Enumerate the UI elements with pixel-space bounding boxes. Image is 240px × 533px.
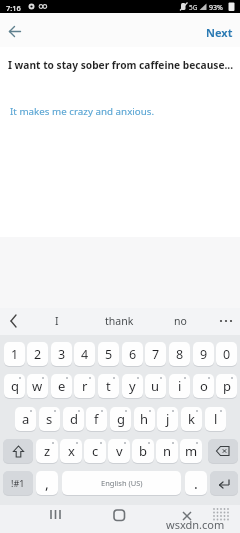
button[interactable]: h [134, 407, 155, 431]
button[interactable]: 0 [216, 342, 237, 366]
staticText: 5 [105, 346, 113, 363]
button[interactable]: i [169, 374, 190, 398]
staticText: l [214, 410, 218, 428]
staticText: r [82, 377, 88, 395]
button[interactable]: , [36, 471, 58, 495]
staticText: f [94, 410, 99, 428]
staticText: o [200, 377, 208, 395]
button[interactable]: y [122, 374, 143, 398]
staticText: h [140, 410, 149, 428]
button[interactable] [208, 439, 238, 463]
button[interactable]: Next [206, 25, 233, 40]
staticText: j [166, 410, 170, 428]
button[interactable] [175, 505, 199, 529]
button[interactable] [210, 471, 238, 495]
staticText: 0 [223, 346, 231, 363]
button[interactable]: n [156, 439, 178, 463]
button[interactable]: b [132, 439, 154, 463]
button[interactable]: !#1 [3, 471, 33, 495]
button[interactable] [3, 439, 33, 463]
button[interactable]: u [145, 374, 166, 398]
button[interactable]: r [74, 374, 95, 398]
staticText: a [22, 410, 30, 428]
button[interactable]: 7 [145, 342, 166, 366]
button[interactable]: c [84, 439, 106, 463]
staticText: z [44, 442, 51, 460]
button[interactable]: 9 [193, 342, 214, 366]
button[interactable]: 8 [169, 342, 190, 366]
button[interactable]: z [36, 439, 58, 463]
button[interactable]: English (US) [62, 471, 181, 495]
staticText: 1 [11, 346, 19, 363]
staticText: , [45, 474, 49, 493]
button[interactable]: no [160, 308, 200, 334]
staticText: y [129, 377, 136, 395]
button[interactable]: q [4, 374, 25, 398]
staticText: 8 [176, 346, 184, 363]
staticText: b [139, 442, 147, 460]
button[interactable]: d [63, 407, 84, 431]
staticText: 7 [152, 346, 160, 363]
staticText: m [185, 442, 198, 460]
button[interactable]: 3 [51, 342, 72, 366]
staticText: thank [105, 314, 134, 328]
button[interactable]: j [157, 407, 178, 431]
button[interactable]: o [193, 374, 214, 398]
staticText: 93% [209, 3, 223, 13]
staticText: 3 [58, 346, 66, 363]
staticText: 9 [200, 346, 208, 363]
staticText: It makes me crazy and anxious. [10, 105, 155, 118]
staticText: v [116, 442, 123, 460]
button[interactable]: m [180, 439, 202, 463]
button[interactable]: 5 [98, 342, 119, 366]
staticText: 5G [189, 3, 198, 12]
staticText: w [32, 377, 43, 395]
staticText: p [223, 377, 231, 395]
staticText: d [70, 410, 78, 428]
staticText: I want to stay sober from caffeine becau… [8, 58, 234, 72]
button[interactable]: 2 [27, 342, 48, 366]
staticText: wsxdn.com [166, 517, 225, 532]
button[interactable]: x [60, 439, 82, 463]
button[interactable] [109, 505, 133, 529]
button[interactable]: v [108, 439, 130, 463]
button[interactable]: 4 [74, 342, 95, 366]
button[interactable]: g [110, 407, 131, 431]
staticText: n [163, 442, 172, 460]
staticText: 2 [34, 346, 42, 363]
staticText: u [151, 377, 160, 395]
staticText: s [46, 410, 53, 428]
button[interactable]: t [98, 374, 119, 398]
button[interactable] [44, 505, 68, 529]
staticText: i [178, 377, 182, 395]
staticText: x [68, 442, 75, 460]
staticText: !#1 [11, 477, 25, 489]
button[interactable]: f [86, 407, 107, 431]
staticText: e [58, 377, 66, 395]
button[interactable]: a [15, 407, 36, 431]
staticText: k [188, 410, 195, 428]
staticText: t [106, 377, 111, 395]
staticText: 6 [129, 346, 137, 363]
button[interactable]: l [205, 407, 226, 431]
button[interactable]: . [185, 471, 207, 495]
button[interactable]: I [37, 308, 77, 334]
button[interactable]: 6 [122, 342, 143, 366]
staticText: English (US) [101, 478, 143, 488]
staticText: . [194, 474, 198, 493]
button[interactable] [2, 19, 28, 45]
button[interactable]: w [27, 374, 48, 398]
button[interactable]: e [51, 374, 72, 398]
staticText: q [11, 377, 19, 395]
staticText: I [55, 314, 59, 328]
staticText: 4 [81, 346, 89, 363]
button[interactable]: 1 [4, 342, 25, 366]
button[interactable]: s [39, 407, 60, 431]
button[interactable]: thank [99, 308, 139, 334]
staticText: c [92, 442, 99, 460]
staticText: no [174, 314, 187, 328]
staticText: g [117, 410, 125, 428]
button[interactable]: k [181, 407, 202, 431]
button[interactable]: p [216, 374, 237, 398]
staticText: 7:16 [6, 3, 21, 13]
